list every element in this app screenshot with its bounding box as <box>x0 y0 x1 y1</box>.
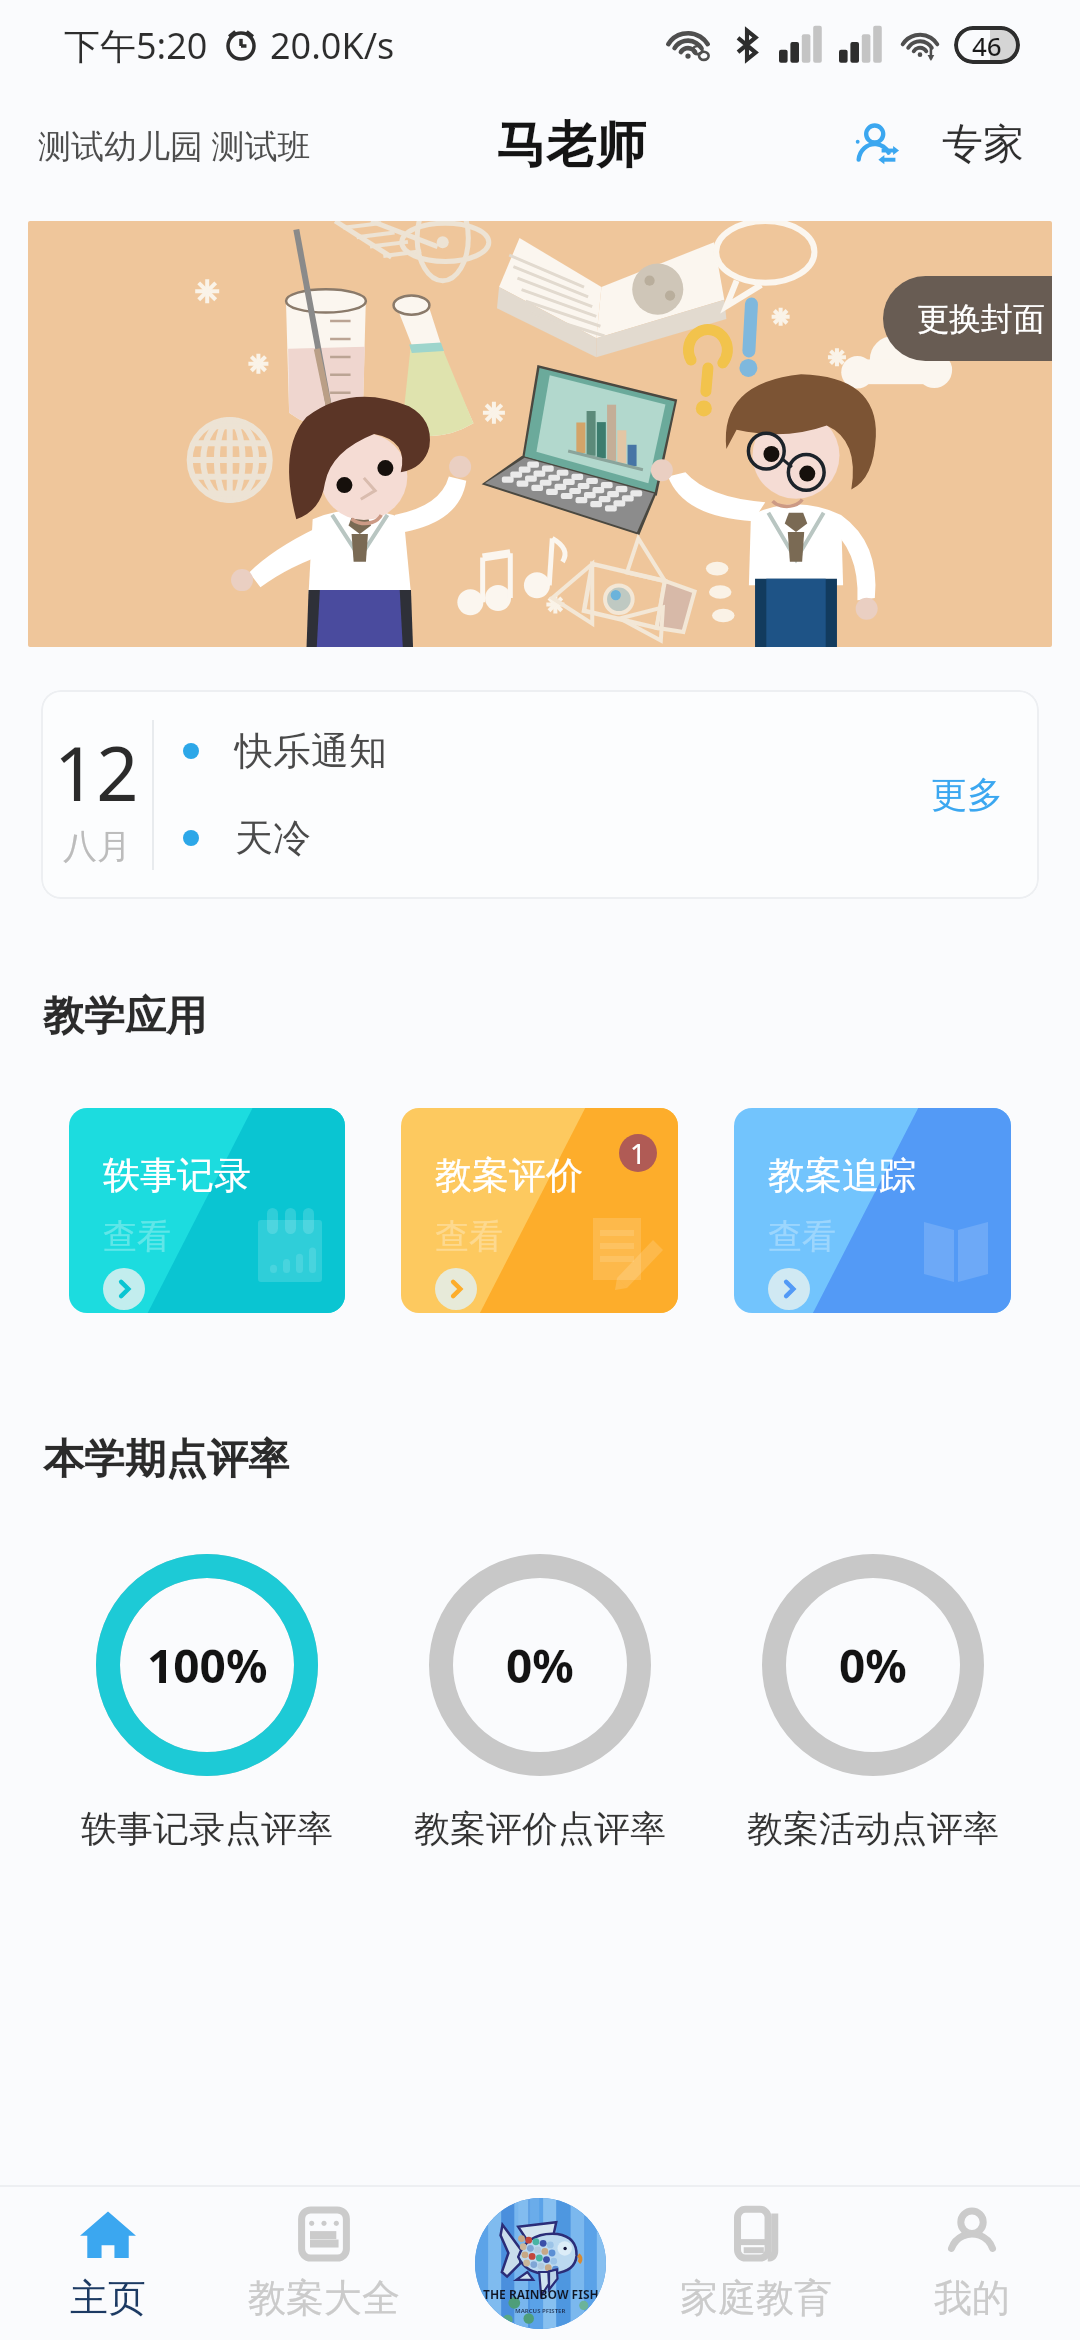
staticText: 测试幼儿园 测试班 <box>38 123 311 168</box>
staticText: 教案评价 <box>435 1152 583 1199</box>
staticText: THE RAINBOW FISH <box>483 2286 599 2302</box>
staticText: 我的 <box>934 2274 1010 2322</box>
button[interactable]: The Rainbow Fish <box>432 2187 648 2340</box>
staticText: 0% <box>839 1634 907 1697</box>
staticText: 下午5:20 <box>64 21 208 70</box>
staticText: 教案活动点评率 <box>747 1806 999 1851</box>
staticText: 马老师 <box>496 114 646 177</box>
staticText: 轶事记录 <box>103 1152 251 1199</box>
staticText: 教案评价点评率 <box>414 1806 666 1851</box>
staticText: 查看 <box>768 1215 836 1258</box>
button[interactable]: Expert <box>834 107 1080 183</box>
staticText: 更换封面 <box>917 299 1045 339</box>
staticText: 天冷 <box>235 814 311 862</box>
staticText: 查看 <box>435 1215 503 1258</box>
staticText: 专家 <box>942 119 1024 171</box>
button[interactable]: 快乐通知 <box>183 727 387 775</box>
button[interactable]: 0% <box>373 1554 706 1851</box>
staticText: 1 <box>630 1134 647 1172</box>
other: Lesson plans <box>296 2206 352 2262</box>
other: Profile <box>944 2206 1000 2262</box>
staticText: 教案追踪 <box>768 1152 916 1199</box>
staticText: 46 <box>972 28 1002 63</box>
button[interactable]: Lesson plans <box>216 2187 432 2340</box>
staticText: 本学期点评率 <box>43 1434 289 1486</box>
other: Family education <box>728 2206 784 2262</box>
staticText: 更多 <box>931 772 1003 817</box>
staticText: 查看 <box>103 1215 171 1258</box>
button[interactable]: Home <box>0 2187 216 2340</box>
button[interactable]: 轶事记录 <box>69 1108 345 1313</box>
staticText: 0% <box>506 1634 574 1697</box>
staticText: 20.0K/s <box>270 21 395 70</box>
staticText: 主页 <box>70 2274 146 2322</box>
staticText: 教案大全 <box>248 2274 400 2322</box>
button[interactable]: 天冷 <box>183 814 311 862</box>
staticText: 快乐通知 <box>235 727 387 775</box>
button[interactable]: 12 <box>41 690 1039 899</box>
button[interactable]: Family education <box>648 2187 864 2340</box>
button[interactable]: 教案追踪 <box>734 1108 1011 1313</box>
other: Home <box>80 2206 136 2262</box>
staticText: MARCUS PFISTER <box>515 2307 566 2315</box>
staticText: 家庭教育 <box>680 2274 832 2322</box>
button[interactable]: 更换封面 <box>28 221 1052 647</box>
button[interactable]: 1 <box>619 1134 657 1172</box>
button[interactable]: 更换封面 <box>883 276 1052 361</box>
button[interactable]: 更多 <box>895 748 1039 841</box>
staticText: 100% <box>147 1634 268 1697</box>
staticText: 12 <box>54 722 139 823</box>
button[interactable]: 0% <box>706 1554 1039 1851</box>
button[interactable]: 100% <box>41 1554 373 1851</box>
other: Expert <box>854 122 900 168</box>
staticText: 教学应用 <box>43 991 207 1043</box>
staticText: 轶事记录点评率 <box>81 1806 333 1851</box>
staticText: 八月 <box>63 825 131 868</box>
button[interactable]: 教案评价 <box>401 1108 678 1313</box>
button[interactable]: The Rainbow Fish <box>475 2198 606 2329</box>
button[interactable]: Profile <box>864 2187 1080 2340</box>
